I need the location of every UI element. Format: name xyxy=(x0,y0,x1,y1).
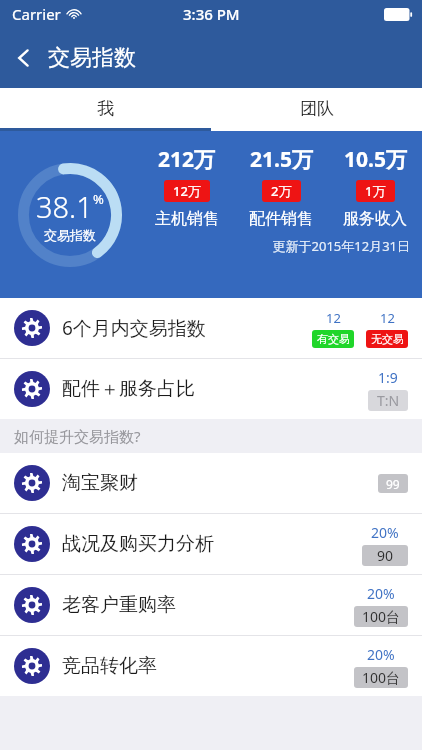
staticText: 更新于2015年12月31日 xyxy=(140,237,410,255)
button[interactable]: 团队 xyxy=(211,88,422,128)
staticText: 12万 xyxy=(173,182,201,200)
staticText: 12 xyxy=(326,309,341,327)
button[interactable]: 老客户重购率 xyxy=(0,575,422,635)
staticText: 淘宝聚财 xyxy=(62,471,378,495)
staticText: 1万 xyxy=(365,182,386,200)
staticText: 100台 xyxy=(362,607,401,626)
staticText: 100台 xyxy=(362,668,401,687)
staticText: 主机销售 xyxy=(155,209,219,229)
staticText: % xyxy=(93,190,104,208)
staticText: 我 xyxy=(97,98,114,119)
staticText: 有交易 xyxy=(317,332,350,346)
staticText: 交易指数 xyxy=(48,44,136,72)
staticText: 90 xyxy=(377,546,394,565)
staticText: 配件销售 xyxy=(249,209,313,229)
staticText: 3:36 PM xyxy=(183,4,240,24)
staticText: 10.5万 xyxy=(344,145,407,174)
staticText: 20% xyxy=(367,584,395,603)
staticText: 21.5万 xyxy=(250,145,313,174)
staticText: 20% xyxy=(371,523,399,542)
button[interactable]: 竞品转化率 xyxy=(0,636,422,696)
staticText: 38.1 xyxy=(36,187,93,226)
staticText: 6个月内交易指数 xyxy=(62,315,312,341)
staticText: 2万 xyxy=(271,182,292,200)
staticText: 无交易 xyxy=(371,332,404,346)
staticText: 212万 xyxy=(158,145,216,174)
button[interactable]: 战况及购买力分析 xyxy=(0,514,422,574)
button[interactable]: 我 xyxy=(0,88,211,128)
staticText: 老客户重购率 xyxy=(62,593,354,617)
staticText: 如何提升交易指数? xyxy=(14,426,141,446)
staticText: 99 xyxy=(386,476,400,492)
button[interactable]: Back xyxy=(0,34,48,82)
button[interactable]: 6个月内交易指数 xyxy=(0,298,422,358)
staticText: T:N xyxy=(377,391,400,410)
staticText: 1:9 xyxy=(378,368,398,387)
staticText: 20% xyxy=(367,645,395,664)
staticText: 服务收入 xyxy=(343,209,407,229)
staticText: 交易指数 xyxy=(44,227,96,243)
staticText: 团队 xyxy=(300,98,334,119)
staticText: 12 xyxy=(380,309,395,327)
staticText: 竞品转化率 xyxy=(62,654,354,678)
button[interactable]: 淘宝聚财 xyxy=(0,453,422,513)
button[interactable]: 配件＋服务占比 xyxy=(0,359,422,419)
staticText: Carrier xyxy=(12,4,61,24)
staticText: 战况及购买力分析 xyxy=(62,532,362,556)
staticText: 配件＋服务占比 xyxy=(62,377,368,401)
